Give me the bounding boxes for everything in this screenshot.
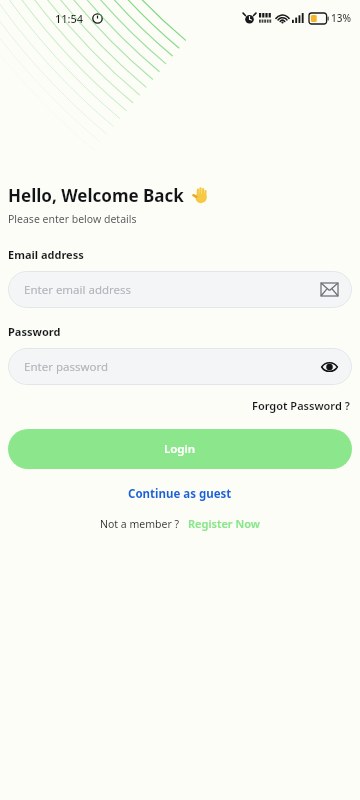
staticText: Enter password <box>24 359 109 375</box>
staticText: 11:54 <box>55 11 84 26</box>
button[interactable]: Enter email address <box>8 271 352 308</box>
staticText: Continue as guest <box>128 486 232 502</box>
staticText: Password <box>8 324 61 339</box>
button[interactable]: Register Now <box>188 516 260 531</box>
other: Email <box>321 283 338 296</box>
button[interactable]: Enter password <box>8 348 352 385</box>
staticText: Login <box>164 441 196 457</box>
button[interactable]: Continue as guest <box>8 486 352 502</box>
staticText: Register Now <box>188 516 260 531</box>
staticText: Please enter below details <box>8 212 137 226</box>
other: Show password <box>321 361 338 373</box>
staticText: Email address <box>8 247 84 262</box>
staticText: 13% <box>331 11 351 25</box>
staticText: Hello, Welcome Back <box>8 184 184 207</box>
button[interactable]: Login <box>8 429 352 469</box>
button[interactable]: Forgot Password ? <box>250 396 352 415</box>
staticText: Enter email address <box>24 282 132 298</box>
staticText: Forgot Password ? <box>252 398 350 413</box>
staticText: Not a member ? <box>100 517 180 531</box>
